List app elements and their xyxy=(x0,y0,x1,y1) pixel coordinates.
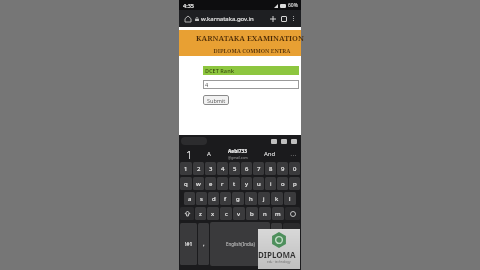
button[interactable]: z xyxy=(195,207,206,220)
staticText: h xyxy=(249,195,253,203)
staticText: n xyxy=(263,210,267,218)
staticText: a xyxy=(188,195,192,203)
staticText: k xyxy=(275,195,279,203)
button[interactable]: Shift xyxy=(180,207,194,220)
staticText: !#1 xyxy=(185,241,193,248)
button[interactable]: n xyxy=(259,207,271,220)
staticText: 5 xyxy=(233,165,237,173)
button[interactable]: k xyxy=(271,192,283,205)
staticText: 4 xyxy=(205,81,209,88)
button[interactable]: a xyxy=(184,192,195,205)
button[interactable]: d xyxy=(208,192,219,205)
staticText: g xyxy=(236,195,240,203)
button[interactable]: 1 xyxy=(179,147,199,161)
button[interactable]: w.karnataka.gov.in xyxy=(195,13,267,24)
staticText: . xyxy=(276,240,278,248)
button[interactable]: 8 xyxy=(265,162,276,175)
staticText: y xyxy=(245,180,249,188)
staticText: Aebi733 xyxy=(228,148,247,155)
button[interactable]: e xyxy=(205,177,216,190)
button[interactable]: 4 xyxy=(217,162,228,175)
button[interactable]: y xyxy=(241,177,252,190)
button[interactable]: c xyxy=(220,207,232,220)
staticText: v xyxy=(237,210,241,218)
staticText: m xyxy=(275,210,281,218)
button[interactable]: w xyxy=(193,177,204,190)
button[interactable]: And xyxy=(256,147,284,161)
staticText: edu · technology xyxy=(267,260,291,264)
button[interactable]: j xyxy=(258,192,270,205)
staticText: 6 xyxy=(245,165,249,173)
button[interactable]: f xyxy=(220,192,231,205)
button[interactable]: 7 xyxy=(253,162,264,175)
button[interactable]: Home xyxy=(182,13,193,24)
button[interactable]: Search xyxy=(181,137,207,145)
button[interactable]: More suggestions xyxy=(284,147,301,161)
staticText: o xyxy=(281,180,285,188)
button[interactable]: b xyxy=(246,207,258,220)
staticText: KARNATAKA EXAMINATION xyxy=(189,33,311,43)
button[interactable]: l xyxy=(284,192,296,205)
button[interactable]: Enter xyxy=(283,223,300,265)
button[interactable]: p xyxy=(289,177,300,190)
staticText: 4:35 xyxy=(183,2,194,9)
staticText: x xyxy=(211,210,215,218)
staticText: c xyxy=(225,210,228,218)
staticText: l xyxy=(289,195,291,203)
button[interactable]: 6 xyxy=(241,162,252,175)
button[interactable]: 1 xyxy=(180,162,192,175)
staticText: j xyxy=(263,195,265,203)
button[interactable]: 5 xyxy=(229,162,240,175)
staticText: 0 xyxy=(293,165,297,173)
staticText: And xyxy=(264,150,276,158)
button[interactable]: g xyxy=(232,192,244,205)
button[interactable]: Aebi733 xyxy=(219,147,256,161)
staticText: s xyxy=(200,195,203,203)
button[interactable]: Backspace xyxy=(285,207,300,220)
staticText: t xyxy=(233,180,236,188)
button[interactable]: . xyxy=(271,223,282,265)
button[interactable]: u xyxy=(253,177,264,190)
button[interactable]: t xyxy=(229,177,240,190)
staticText: DIPLOMA X xyxy=(258,249,300,260)
button[interactable]: 2 xyxy=(193,162,204,175)
button[interactable]: Tabs xyxy=(278,13,289,24)
button[interactable]: A xyxy=(199,147,219,161)
button[interactable]: q xyxy=(180,177,192,190)
button[interactable]: , xyxy=(198,223,209,265)
button[interactable]: 0 xyxy=(289,162,300,175)
staticText: d xyxy=(212,195,216,203)
button[interactable]: 9 xyxy=(277,162,288,175)
staticText: , xyxy=(203,240,205,248)
staticText: u xyxy=(257,180,261,188)
button[interactable]: m xyxy=(272,207,284,220)
button[interactable]: i xyxy=(265,177,276,190)
staticText: 1 xyxy=(186,147,193,161)
staticText: b xyxy=(250,210,254,218)
button[interactable]: 4 xyxy=(203,80,299,89)
button[interactable]: GIF xyxy=(269,136,279,146)
staticText: 9 xyxy=(281,165,285,173)
staticText: 60% xyxy=(288,2,298,9)
staticText: DIPLOMA COMMON ENTRA xyxy=(191,47,313,54)
button[interactable]: o xyxy=(277,177,288,190)
button[interactable]: s xyxy=(196,192,207,205)
button[interactable]: More options xyxy=(289,14,298,23)
button[interactable]: x xyxy=(207,207,219,220)
staticText: f xyxy=(224,195,227,203)
button[interactable]: New tab xyxy=(267,13,278,24)
button[interactable]: v xyxy=(233,207,245,220)
button[interactable]: r xyxy=(217,177,228,190)
button[interactable]: Sticker xyxy=(279,136,289,146)
staticText: English(India) xyxy=(226,241,255,247)
staticText: @gmail.com xyxy=(228,155,248,160)
button[interactable]: !#1 xyxy=(180,223,197,265)
button[interactable]: Location xyxy=(289,136,299,146)
staticText: p xyxy=(293,180,297,188)
button[interactable]: 3 xyxy=(205,162,216,175)
staticText: q xyxy=(184,180,188,188)
button[interactable]: English(India) xyxy=(210,222,270,266)
button[interactable]: h xyxy=(245,192,257,205)
staticText: 7 xyxy=(257,165,261,173)
button[interactable]: Submit xyxy=(203,95,229,105)
